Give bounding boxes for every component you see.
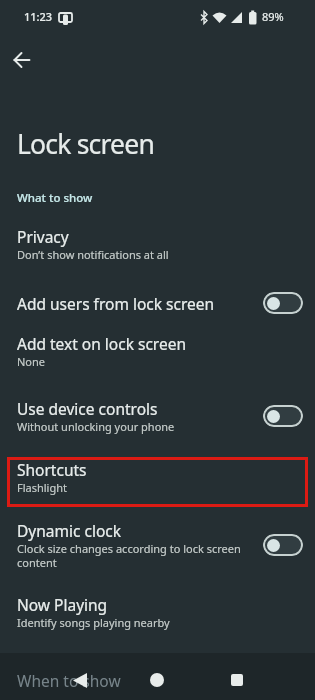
staticText: Flashlight <box>17 480 67 495</box>
staticText: Identify songs playing nearby <box>17 615 170 630</box>
button[interactable]: Now Playing <box>0 594 315 630</box>
button[interactable]: Privacy <box>0 226 315 262</box>
button[interactable] <box>66 666 94 694</box>
staticText: When to show <box>17 670 121 691</box>
button[interactable]: Use device controls <box>0 398 315 434</box>
button[interactable] <box>263 534 303 556</box>
button[interactable]: Add users from lock screen <box>0 286 315 320</box>
staticText: Clock size changes according to lock scr… <box>17 541 241 570</box>
staticText: What to show <box>17 190 93 206</box>
button[interactable]: Add text on lock screen <box>0 333 315 369</box>
button[interactable]: Shortcuts <box>0 459 315 495</box>
button[interactable]: Dynamic clock <box>0 520 315 570</box>
button[interactable] <box>263 292 303 314</box>
staticText: Add users from lock screen <box>17 293 263 314</box>
staticText: Add text on lock screen <box>17 333 186 354</box>
staticText: Now Playing <box>17 594 108 615</box>
staticText: None <box>17 354 46 369</box>
button[interactable] <box>263 405 303 427</box>
button[interactable] <box>6 44 38 76</box>
staticText: 89% <box>262 9 284 24</box>
staticText: Privacy <box>17 226 69 247</box>
staticText: Dynamic clock <box>17 520 121 541</box>
staticText: 11:23 <box>24 9 53 24</box>
staticText: Don’t show notifications at all <box>17 247 169 262</box>
staticText: Use device controls <box>17 398 158 419</box>
button[interactable] <box>143 666 171 694</box>
staticText: Shortcuts <box>17 459 87 480</box>
staticText: Without unlocking your phone <box>17 419 175 434</box>
button[interactable] <box>223 666 251 694</box>
staticText: Lock screen <box>17 126 154 162</box>
